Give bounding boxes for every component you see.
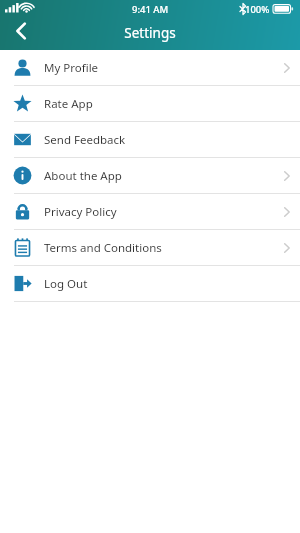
button[interactable]: Rate App [0, 86, 300, 121]
staticText: My Profile [44, 60, 274, 76]
staticText: Log Out [44, 276, 274, 292]
button[interactable]: About the App [0, 158, 300, 193]
staticText: Rate App [44, 96, 274, 112]
staticText: Privacy Policy [44, 204, 274, 220]
staticText: Send Feedback [44, 132, 274, 148]
button[interactable]: My Profile [0, 50, 300, 85]
button[interactable]: Log Out [0, 266, 300, 301]
staticText: Terms and Conditions [44, 240, 274, 256]
button[interactable]: Terms and Conditions [0, 230, 300, 265]
staticText: 100% [245, 3, 270, 16]
button[interactable]: Send Feedback [0, 122, 300, 157]
button[interactable]: Back [4, 14, 38, 48]
button[interactable]: Privacy Policy [0, 194, 300, 229]
staticText: Settings [124, 24, 176, 42]
staticText: About the App [44, 168, 274, 184]
staticText: 9:41 AM [132, 3, 169, 16]
